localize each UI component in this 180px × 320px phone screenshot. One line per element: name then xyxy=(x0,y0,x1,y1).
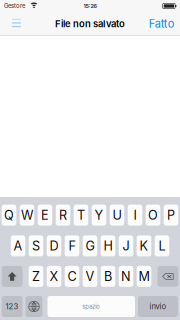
button[interactable]: Z xyxy=(29,266,43,287)
button[interactable]: invio xyxy=(138,296,178,317)
staticText: W xyxy=(21,207,33,223)
button[interactable]: spazio xyxy=(47,296,135,317)
button[interactable]: Cancella xyxy=(157,266,178,287)
button[interactable]: O xyxy=(146,205,160,226)
button[interactable]: V xyxy=(83,266,97,287)
button[interactable]: C xyxy=(65,266,79,287)
staticText: N xyxy=(121,269,131,284)
button[interactable]: Maiuscole xyxy=(2,266,22,287)
button[interactable]: P xyxy=(164,205,178,226)
staticText: F xyxy=(68,238,75,253)
staticText: Gestore xyxy=(4,2,25,9)
button[interactable]: D xyxy=(47,235,61,256)
staticText: Q xyxy=(4,207,14,223)
staticText: X xyxy=(49,269,58,284)
staticText: 15:26 xyxy=(83,3,96,9)
button[interactable]: J xyxy=(119,235,133,256)
staticText: I xyxy=(133,207,136,223)
button[interactable]: Y xyxy=(92,205,106,226)
staticText: H xyxy=(103,238,112,253)
staticText: G xyxy=(85,238,94,253)
staticText: V xyxy=(85,269,94,284)
button[interactable]: F xyxy=(65,235,79,256)
button[interactable]: S xyxy=(29,235,43,256)
staticText: P xyxy=(167,207,175,223)
button[interactable]: E xyxy=(38,205,52,226)
staticText: D xyxy=(49,238,58,253)
staticText: T xyxy=(77,207,85,223)
button[interactable]: N xyxy=(119,266,133,287)
button[interactable]: H xyxy=(101,235,115,256)
button[interactable]: U xyxy=(110,205,124,226)
staticText: S xyxy=(32,238,40,253)
button[interactable]: M xyxy=(137,266,151,287)
staticText: U xyxy=(112,207,121,223)
staticText: J xyxy=(122,238,129,253)
staticText: invio xyxy=(149,302,166,311)
staticText: Y xyxy=(94,207,103,223)
button[interactable]: I xyxy=(128,205,142,226)
staticText: M xyxy=(138,269,149,284)
staticText: Fatto xyxy=(149,17,175,30)
button[interactable]: A xyxy=(11,235,25,256)
staticText: B xyxy=(104,269,112,284)
button[interactable]: Fatto xyxy=(149,11,175,36)
button[interactable]: R xyxy=(56,205,70,226)
button[interactable]: W xyxy=(20,205,34,226)
button[interactable]: 123 xyxy=(2,296,22,317)
button[interactable]: K xyxy=(137,235,151,256)
button[interactable]: X xyxy=(47,266,61,287)
button[interactable]: Cambia tastiera xyxy=(25,296,42,317)
button[interactable]: B xyxy=(101,266,115,287)
staticText: spazio xyxy=(82,303,100,310)
button[interactable]: Menu xyxy=(6,11,27,36)
button[interactable]: G xyxy=(83,235,97,256)
staticText: Z xyxy=(32,269,40,284)
staticText: A xyxy=(13,238,22,253)
staticText: K xyxy=(139,238,148,253)
staticText: C xyxy=(67,269,76,284)
staticText: R xyxy=(59,207,67,223)
staticText: O xyxy=(148,207,158,223)
button[interactable]: Q xyxy=(2,205,16,226)
button[interactable]: L xyxy=(155,235,169,256)
staticText: E xyxy=(41,207,49,223)
staticText: File non salvato xyxy=(55,18,125,29)
staticText: L xyxy=(158,238,165,253)
button[interactable]: T xyxy=(74,205,88,226)
staticText: 123 xyxy=(6,302,19,311)
